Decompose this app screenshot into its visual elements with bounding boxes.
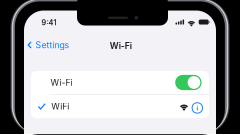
staticText: Wi-Fi	[110, 41, 132, 51]
staticText: 9:41	[41, 18, 56, 27]
button[interactable]: Settings	[25, 35, 72, 54]
staticText: Wi-Fi	[50, 77, 72, 88]
staticText: Settings	[35, 40, 69, 50]
button[interactable]: Wi-Fi	[31, 71, 209, 94]
staticText: WiFi	[51, 101, 69, 112]
button[interactable]: WiFi	[31, 95, 209, 118]
